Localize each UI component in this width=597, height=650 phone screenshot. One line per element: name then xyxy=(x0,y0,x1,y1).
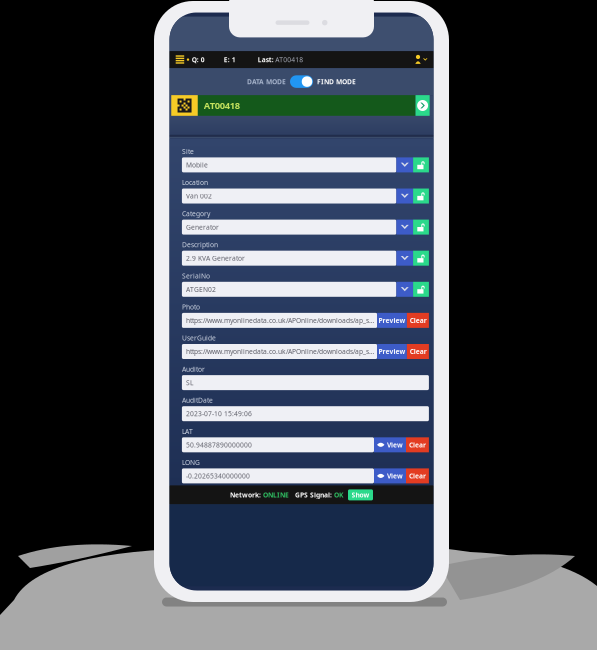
button[interactable]: Choose Description xyxy=(396,251,413,266)
staticText: OK xyxy=(332,490,343,499)
staticText: Preview xyxy=(379,347,406,356)
staticText: View xyxy=(387,471,403,480)
staticText: LONG xyxy=(182,458,200,467)
staticText: Location xyxy=(182,178,208,187)
button[interactable]: Choose Location xyxy=(396,188,413,203)
staticText: Category xyxy=(182,209,210,218)
button[interactable]: View xyxy=(374,468,406,483)
staticText: 2.9 KVA Generator xyxy=(186,254,245,263)
button[interactable]: Unlock Site xyxy=(413,157,429,172)
staticText: -0.20265340000000 xyxy=(186,471,250,480)
button[interactable]: Choose Category xyxy=(396,220,413,235)
staticText: Clear xyxy=(409,440,426,449)
staticText: LAT xyxy=(182,427,193,436)
button[interactable]: Clear xyxy=(407,344,429,359)
staticText: Clear xyxy=(410,316,427,325)
staticText: FIND MODE xyxy=(317,77,356,86)
staticText: SerialNo xyxy=(182,271,210,280)
staticText: AT00418 xyxy=(275,55,303,64)
staticText: Clear xyxy=(410,347,427,356)
button[interactable]: Unlock Category xyxy=(413,220,429,235)
staticText: https://www.myonlinedata.co.uk/APOnline/… xyxy=(186,347,374,356)
button[interactable]: Preview xyxy=(377,313,407,328)
staticText: Photo xyxy=(182,302,200,311)
staticText: GPS Signal: xyxy=(289,490,332,499)
button[interactable]: Open record xyxy=(415,95,430,116)
button[interactable]: Show xyxy=(343,489,373,500)
staticText: Preview xyxy=(379,316,406,325)
staticText: Description xyxy=(182,240,218,249)
staticText: SL xyxy=(186,378,193,387)
button[interactable]: View xyxy=(374,437,406,452)
button[interactable]: Account xyxy=(415,55,433,64)
staticText: DATA MODE xyxy=(247,77,286,86)
staticText: ONLINE xyxy=(261,490,289,499)
button[interactable]: Preview xyxy=(377,344,407,359)
staticText: Network: xyxy=(230,490,261,499)
staticText: AuditDate xyxy=(182,396,213,405)
staticText: Site xyxy=(182,147,194,156)
button[interactable]: Clear xyxy=(406,437,429,452)
staticText: Mobile xyxy=(186,160,208,169)
button[interactable]: Queue xyxy=(169,55,205,64)
staticText: View xyxy=(387,440,403,449)
staticText: E: 1 xyxy=(224,55,236,64)
staticText: https://www.myonlinedata.co.uk/APOnline/… xyxy=(186,316,374,325)
staticText: UserGuide xyxy=(182,334,216,342)
staticText: Last: xyxy=(258,55,274,64)
button[interactable]: Unlock Location xyxy=(413,188,429,203)
staticText: Show xyxy=(351,490,369,499)
staticText: AT00418 xyxy=(204,99,240,112)
button[interactable]: Unlock SerialNo xyxy=(413,282,429,297)
button[interactable]: Clear xyxy=(407,313,429,328)
button[interactable]: Clear xyxy=(406,468,429,483)
staticText: Van 002 xyxy=(186,192,212,200)
button[interactable]: Unlock Description xyxy=(413,251,429,266)
staticText: Q: 0 xyxy=(192,55,205,64)
button[interactable]: Choose Site xyxy=(396,157,413,172)
staticText: ATGEN02 xyxy=(186,285,216,294)
staticText: 50.94887890000000 xyxy=(186,440,252,449)
button[interactable]: Choose SerialNo xyxy=(396,282,413,297)
button[interactable]: Scan barcode xyxy=(171,95,198,116)
button[interactable]: Switch between data mode and find mode xyxy=(286,75,317,88)
staticText: Auditor xyxy=(182,365,205,374)
staticText: 2023-07-10 15:49:06 xyxy=(186,409,252,418)
staticText: Generator xyxy=(186,223,219,232)
staticText: Clear xyxy=(409,471,426,480)
